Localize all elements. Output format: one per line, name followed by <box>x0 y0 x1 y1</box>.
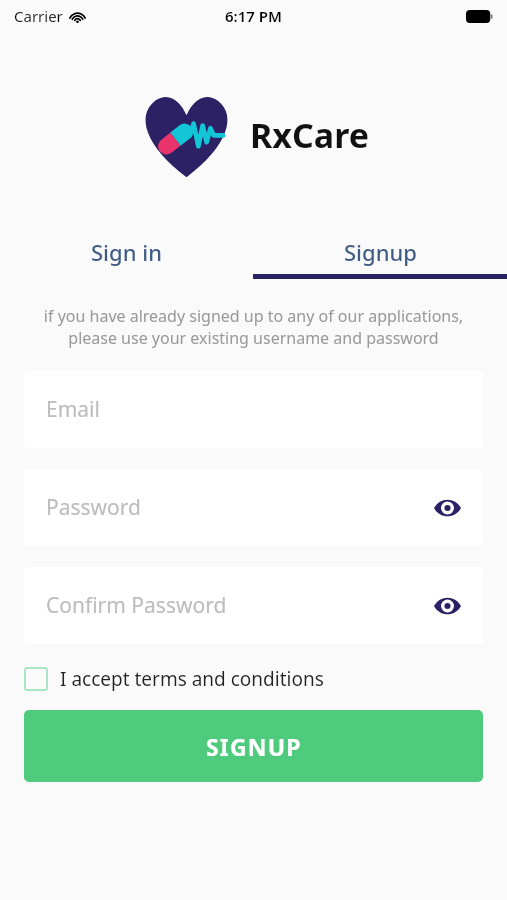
staticText: SIGNUP <box>206 731 302 762</box>
button[interactable]: Signup <box>253 230 507 274</box>
staticText: I accept terms and conditions <box>60 666 324 692</box>
staticText: Sign in <box>91 237 162 267</box>
staticText: Confirm Password <box>46 591 227 620</box>
button[interactable]: Confirm Password <box>24 567 483 644</box>
button[interactable]: I accept terms and conditions <box>24 666 483 692</box>
staticText: if you have already signed up to any of … <box>28 305 479 349</box>
button[interactable]: Email <box>24 371 483 448</box>
button[interactable]: Show confirm password <box>425 584 469 628</box>
staticText: Email <box>46 395 100 424</box>
staticText: RxCare <box>250 112 369 158</box>
staticText: Password <box>46 493 141 522</box>
staticText: Signup <box>344 237 417 267</box>
button[interactable]: Sign in <box>0 230 253 274</box>
staticText: 6:17 PM <box>225 6 282 26</box>
button[interactable]: SIGNUP <box>24 710 483 782</box>
button[interactable]: Password <box>24 469 483 546</box>
button[interactable]: Show password <box>425 486 469 530</box>
staticText: Carrier <box>14 6 63 26</box>
